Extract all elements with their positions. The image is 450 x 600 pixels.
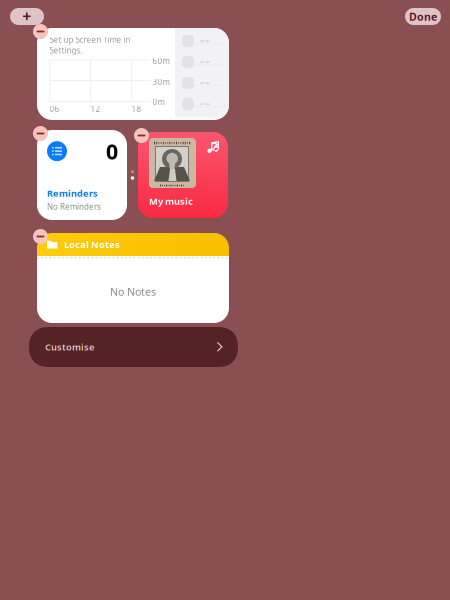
staticText: 30m bbox=[152, 77, 169, 87]
staticText: 06 bbox=[49, 104, 59, 114]
button[interactable]: Customise bbox=[29, 327, 238, 367]
staticText: 0 bbox=[106, 137, 118, 165]
button[interactable]: Add widget bbox=[10, 8, 44, 25]
button[interactable]: Remove widget bbox=[134, 128, 149, 143]
button[interactable]: Local Notes bbox=[37, 233, 229, 323]
button[interactable]: Remove widget bbox=[33, 229, 48, 244]
staticText: 0m bbox=[152, 97, 164, 107]
staticText: My music bbox=[149, 195, 193, 207]
staticText: 12 bbox=[90, 104, 100, 114]
button[interactable]: Remove widget bbox=[33, 126, 48, 141]
staticText: Reminders bbox=[47, 187, 98, 199]
button[interactable]: 0 bbox=[37, 130, 127, 220]
staticText: Set up Screen Time in Settings. bbox=[49, 34, 130, 56]
button[interactable]: Done bbox=[405, 8, 441, 25]
staticText: Customise bbox=[45, 341, 94, 353]
staticText: No Reminders bbox=[47, 201, 101, 212]
button[interactable]: Remove widget bbox=[33, 24, 48, 39]
staticText: No Notes bbox=[110, 284, 156, 299]
button[interactable]: My music bbox=[138, 132, 228, 218]
staticText: Local Notes bbox=[64, 238, 120, 251]
button[interactable]: Set up Screen Time in Settings. bbox=[37, 28, 229, 120]
staticText: 60m bbox=[152, 56, 169, 66]
staticText: Done bbox=[409, 9, 437, 24]
staticText: 18 bbox=[131, 104, 141, 114]
